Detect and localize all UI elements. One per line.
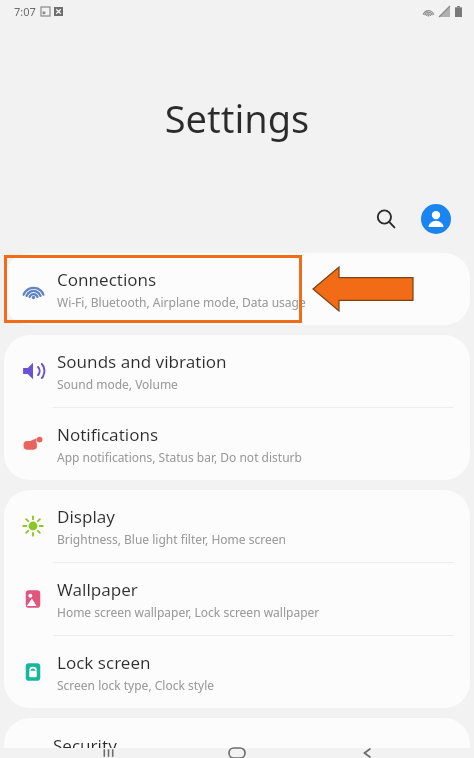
button[interactable]: Back xyxy=(345,748,389,758)
staticText: Wallpaper xyxy=(57,578,138,601)
staticText: Notifications xyxy=(57,423,159,446)
staticText: Sound mode, Volume xyxy=(57,376,178,392)
staticText: Connections xyxy=(57,268,157,291)
staticText: Brightness, Blue light filter, Home scre… xyxy=(57,531,286,547)
button[interactable]: Notifications xyxy=(4,408,470,480)
staticText: Security xyxy=(53,734,117,748)
staticText: Home screen wallpaper, Lock screen wallp… xyxy=(57,604,320,620)
staticText: App notifications, Status bar, Do not di… xyxy=(57,449,302,465)
button[interactable]: Home xyxy=(215,748,259,758)
button[interactable]: Connections xyxy=(4,253,470,325)
staticText: Lock screen xyxy=(57,651,151,674)
button[interactable]: Recents xyxy=(86,748,130,758)
button[interactable]: Sounds and vibration xyxy=(4,335,470,407)
button[interactable]: Search xyxy=(366,199,406,239)
staticText: Wi-Fi, Bluetooth, Airplane mode, Data us… xyxy=(57,294,306,310)
button[interactable]: Wallpaper xyxy=(4,563,470,635)
staticText: Sounds and vibration xyxy=(57,350,227,373)
staticText: 7:07 xyxy=(14,4,36,19)
button[interactable]: Display xyxy=(4,490,470,562)
staticText: Display xyxy=(57,505,115,528)
button[interactable]: Lock screen xyxy=(4,636,470,708)
button[interactable]: Account xyxy=(416,199,456,239)
staticText: Settings xyxy=(0,92,474,144)
button[interactable]: Security xyxy=(4,718,470,748)
staticText: Screen lock type, Clock style xyxy=(57,677,215,693)
